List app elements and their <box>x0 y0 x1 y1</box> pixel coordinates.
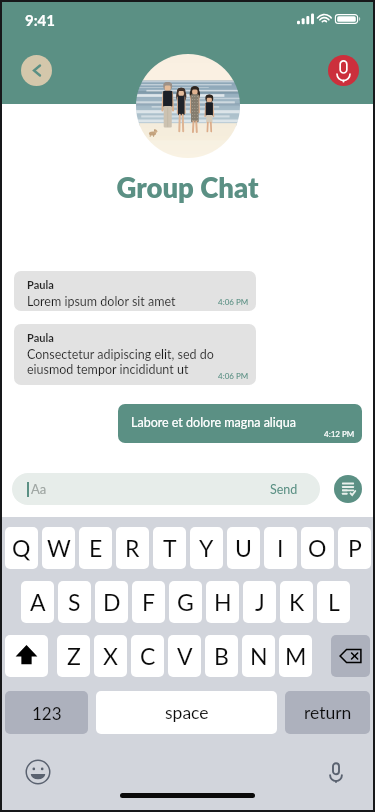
staticText: C <box>140 642 156 670</box>
staticText: eiusmod tempor incididunt ut <box>27 362 189 377</box>
staticText: M <box>285 642 307 670</box>
staticText: 9:41 <box>25 11 55 29</box>
staticText: H <box>214 588 232 616</box>
staticText: 4:06 PM <box>218 297 249 307</box>
staticText: L <box>328 588 340 616</box>
button[interactable]: Z <box>57 635 90 677</box>
staticText: G <box>177 588 194 616</box>
button[interactable]: Paula <box>14 324 256 385</box>
staticText: X <box>103 642 118 670</box>
button[interactable]: Emoji <box>24 758 52 786</box>
button[interactable]: M <box>279 635 312 677</box>
button[interactable]: C <box>131 635 164 677</box>
staticText: 123 <box>32 703 62 723</box>
button[interactable]: Y <box>190 527 223 569</box>
button[interactable]: H <box>206 581 239 623</box>
button[interactable]: Backspace <box>331 635 370 677</box>
staticText: Lorem ipsum dolor sit amet <box>27 294 176 309</box>
staticText: 4:12 PM <box>324 429 355 439</box>
button[interactable]: Aa <box>12 473 320 505</box>
button[interactable]: K <box>280 581 313 623</box>
staticText: V <box>177 642 193 670</box>
staticText: Y <box>199 534 214 562</box>
button[interactable]: F <box>132 581 165 623</box>
staticText: Send <box>270 482 298 497</box>
staticText: A <box>30 588 46 616</box>
button[interactable]: Voice message <box>328 55 359 86</box>
button[interactable]: space <box>96 691 277 734</box>
staticText: Consectetur adipiscing elit, sed do <box>27 347 214 362</box>
button[interactable]: N <box>242 635 275 677</box>
button[interactable]: J <box>243 581 276 623</box>
staticText: return <box>304 702 352 723</box>
button[interactable]: Labore et dolore magna aliqua <box>118 404 362 443</box>
button[interactable]: Back <box>21 55 52 86</box>
staticText: R <box>125 534 140 562</box>
button[interactable]: V <box>168 635 201 677</box>
button[interactable]: O <box>301 527 334 569</box>
button[interactable]: U <box>227 527 260 569</box>
staticText: W <box>47 534 71 562</box>
staticText: E <box>89 534 103 562</box>
button[interactable]: I <box>264 527 297 569</box>
button[interactable]: Q <box>5 527 38 569</box>
staticText: J <box>255 588 265 616</box>
button[interactable]: Paula <box>14 271 256 311</box>
button[interactable]: A <box>21 581 54 623</box>
button[interactable]: W <box>42 527 75 569</box>
button[interactable]: return <box>285 691 370 734</box>
staticText: B <box>214 642 229 670</box>
button[interactable]: X <box>94 635 127 677</box>
button[interactable]: Send note <box>334 475 362 503</box>
staticText: I <box>277 534 284 562</box>
staticText: F <box>142 588 156 616</box>
button[interactable]: R <box>116 527 149 569</box>
button[interactable]: P <box>338 527 371 569</box>
button[interactable]: G <box>169 581 202 623</box>
staticText: N <box>250 642 268 670</box>
button[interactable]: T <box>153 527 186 569</box>
staticText: O <box>308 534 327 562</box>
staticText: Paula <box>27 278 54 291</box>
staticText: Z <box>67 642 81 670</box>
button[interactable]: D <box>95 581 128 623</box>
button[interactable]: Dictate <box>322 758 350 786</box>
button[interactable]: S <box>58 581 91 623</box>
staticText: 4:06 PM <box>218 371 249 381</box>
staticText: Paula <box>27 331 54 344</box>
button[interactable]: L <box>317 581 350 623</box>
button[interactable]: 123 <box>5 691 88 734</box>
staticText: Group Chat <box>0 171 375 204</box>
staticText: K <box>289 588 305 616</box>
staticText: Q <box>12 534 31 562</box>
staticText: U <box>235 534 252 562</box>
staticText: S <box>68 588 81 616</box>
staticText: Labore et dolore magna aliqua <box>131 415 296 430</box>
button[interactable]: B <box>205 635 238 677</box>
staticText: space <box>165 702 209 723</box>
button[interactable]: Shift <box>5 635 48 677</box>
staticText: T <box>163 534 177 562</box>
staticText: Aa <box>31 481 47 497</box>
staticText: D <box>103 588 121 616</box>
button[interactable]: E <box>79 527 112 569</box>
staticText: P <box>348 534 362 562</box>
